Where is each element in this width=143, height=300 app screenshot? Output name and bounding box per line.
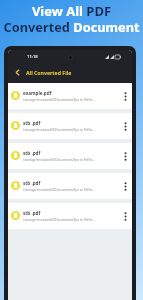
staticText: stb .pdf	[23, 120, 41, 126]
staticText: /storage/emulated/0/Documents/Xps to Pdf…	[23, 128, 96, 132]
staticText: stb .pdf	[23, 150, 41, 156]
staticText: /storage/emulated/0/Documents/Xps to Pdf…	[23, 98, 96, 102]
staticText: /storage/emulated/0/Documents/Xps to Pdf…	[23, 218, 96, 222]
button[interactable]: stb .pdf	[8, 203, 132, 229]
button[interactable]: More options	[118, 83, 132, 109]
button[interactable]: example.pdf	[8, 83, 132, 109]
staticText: /storage/emulated/0/Documents/Xps to Pdf…	[23, 158, 96, 162]
staticText: Converted Document	[0, 18, 143, 35]
staticText: View All PDF	[0, 2, 143, 20]
button[interactable]: More options	[118, 203, 132, 229]
button[interactable]: stb .pdf	[8, 113, 132, 139]
staticText: All Converted File	[26, 69, 72, 76]
button[interactable]: More options	[118, 143, 132, 169]
staticText: stb .pdf	[23, 180, 41, 186]
button[interactable]: More options	[118, 113, 132, 139]
button[interactable]: Back	[12, 67, 23, 78]
button[interactable]: stb .pdf	[8, 173, 132, 199]
button[interactable]: stb .pdf	[8, 143, 132, 169]
staticText: stb .pdf	[23, 210, 41, 216]
staticText: example.pdf	[23, 90, 52, 96]
staticText: 11:18	[27, 54, 38, 60]
staticText: /storage/emulated/0/Documents/Xps to Pdf…	[23, 188, 96, 192]
button[interactable]: More options	[118, 173, 132, 199]
